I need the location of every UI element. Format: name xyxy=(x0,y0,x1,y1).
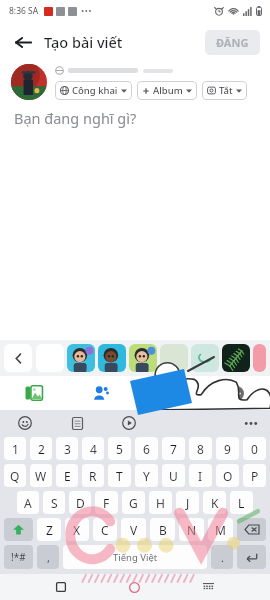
button[interactable]: ĐĂNG xyxy=(205,30,260,55)
button[interactable]: Nhãn dán xyxy=(120,414,138,432)
staticText: V xyxy=(130,522,138,538)
button[interactable]: N xyxy=(179,518,204,541)
button[interactable]: H xyxy=(149,491,172,514)
staticText: P xyxy=(251,468,259,484)
staticText: J xyxy=(186,495,190,511)
button[interactable]: F xyxy=(95,491,118,514)
button[interactable]: S xyxy=(43,491,65,514)
button[interactable]: 5 xyxy=(108,437,131,460)
staticText: N xyxy=(187,522,197,538)
button[interactable]: Gần đây xyxy=(49,575,73,599)
button[interactable]: K xyxy=(203,491,226,514)
button[interactable]: Z xyxy=(37,518,61,541)
button[interactable]: !*# xyxy=(4,545,33,569)
button[interactable]: U xyxy=(162,464,185,487)
staticText: R xyxy=(89,468,97,484)
button[interactable]: C xyxy=(93,518,117,541)
button[interactable] xyxy=(191,344,219,372)
staticText: 3 xyxy=(64,441,71,457)
staticText: U xyxy=(169,468,178,484)
staticText: 2 xyxy=(38,441,45,457)
button[interactable]: 7 xyxy=(162,437,185,460)
staticText: 4 xyxy=(90,441,97,457)
button[interactable]: Xóa xyxy=(237,518,266,541)
staticText: Tắt xyxy=(219,84,233,97)
button[interactable]: Tắt xyxy=(202,81,247,100)
button[interactable]: X xyxy=(65,518,89,541)
button[interactable]: Enter xyxy=(237,545,266,569)
button[interactable] xyxy=(253,344,266,372)
button[interactable]: . xyxy=(211,545,233,569)
button[interactable]: , xyxy=(37,545,59,569)
button[interactable] xyxy=(222,344,250,372)
button[interactable]: Thêm tùy chọn xyxy=(242,414,260,432)
staticText: . xyxy=(221,550,224,565)
button[interactable]: J xyxy=(176,491,199,514)
button[interactable]: Công khai xyxy=(55,81,132,100)
button[interactable]: 8 xyxy=(189,437,212,460)
staticText: H xyxy=(156,495,165,511)
button[interactable]: Trang chủ xyxy=(122,575,146,599)
button[interactable]: Cảm xúc xyxy=(134,376,202,410)
staticText: D xyxy=(76,495,85,511)
button[interactable]: Shift xyxy=(4,518,33,541)
button[interactable] xyxy=(67,344,95,372)
button[interactable]: Tiếng Việt xyxy=(63,545,207,569)
staticText: 0 xyxy=(251,441,258,457)
button[interactable]: 2 xyxy=(30,437,52,460)
staticText: O xyxy=(223,468,233,484)
button[interactable]: T xyxy=(108,464,131,487)
staticText: Y xyxy=(143,468,150,484)
button[interactable]: A xyxy=(17,491,39,514)
staticText: 1 xyxy=(12,441,19,457)
button[interactable]: Gắn thẻ bạn bè xyxy=(67,376,134,410)
staticText: K xyxy=(211,495,219,511)
button[interactable]: 9 xyxy=(216,437,239,460)
button[interactable] xyxy=(129,344,157,372)
button[interactable]: E xyxy=(56,464,78,487)
button[interactable]: Thêm xyxy=(202,376,270,410)
staticText: 7 xyxy=(170,441,177,457)
button[interactable]: Q xyxy=(4,464,26,487)
button[interactable]: D xyxy=(69,491,91,514)
button[interactable]: 0 xyxy=(243,437,266,460)
staticText: L xyxy=(238,495,245,511)
button[interactable]: V xyxy=(121,518,146,541)
staticText: 8 xyxy=(197,441,204,457)
staticText: 5 xyxy=(116,441,123,457)
button[interactable]: Album xyxy=(137,81,197,100)
staticText: Công khai xyxy=(72,84,118,97)
button[interactable]: Biểu tượng cảm xúc xyxy=(16,414,34,432)
button[interactable]: G xyxy=(122,491,145,514)
button[interactable]: B xyxy=(150,518,175,541)
staticText: S xyxy=(51,495,58,511)
staticText: C xyxy=(101,522,109,538)
staticText: Tiếng Việt xyxy=(113,551,158,564)
button[interactable] xyxy=(160,344,188,372)
staticText: I xyxy=(198,468,203,484)
button[interactable]: Y xyxy=(135,464,158,487)
button[interactable]: P xyxy=(243,464,266,487)
button[interactable]: O xyxy=(216,464,239,487)
staticText: B xyxy=(159,522,167,538)
button[interactable]: L xyxy=(230,491,253,514)
button[interactable]: 3 xyxy=(56,437,78,460)
button[interactable]: R xyxy=(82,464,104,487)
button[interactable]: Ảnh xyxy=(0,376,67,410)
button[interactable]: M xyxy=(208,518,233,541)
button[interactable]: W xyxy=(30,464,52,487)
button[interactable]: Ẩn bàn phím xyxy=(196,575,220,599)
staticText: Album xyxy=(153,84,183,97)
button[interactable]: Thu gọn xyxy=(4,344,32,372)
button[interactable]: Quay lại xyxy=(10,29,36,55)
button[interactable]: 4 xyxy=(82,437,104,460)
staticText: , xyxy=(47,550,50,565)
button[interactable]: Bảng nhớ tạm xyxy=(68,414,86,432)
staticText: ĐĂNG xyxy=(216,35,249,50)
button[interactable]: 1 xyxy=(4,437,26,460)
staticText: E xyxy=(64,468,71,484)
button[interactable]: I xyxy=(189,464,212,487)
button[interactable]: 6 xyxy=(135,437,158,460)
button[interactable] xyxy=(98,344,126,372)
